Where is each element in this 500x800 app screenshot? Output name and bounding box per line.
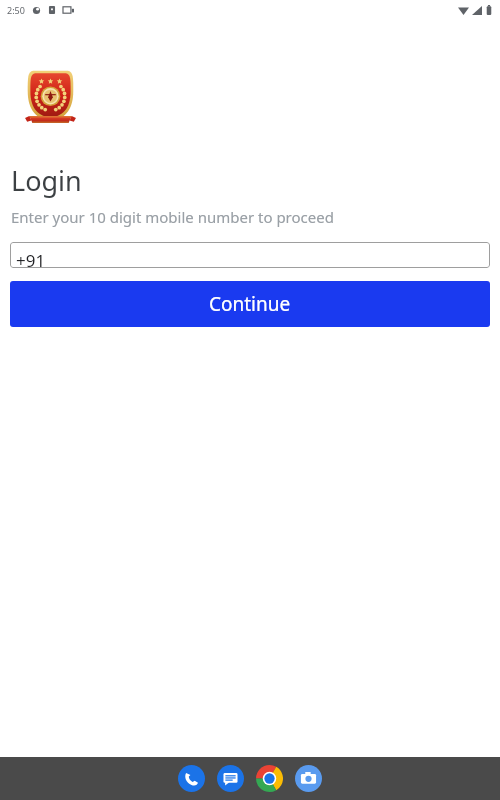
button[interactable]: +91 <box>10 242 490 268</box>
staticText: _____ _____ <box>52 251 123 268</box>
staticText: +91 <box>16 249 46 268</box>
button[interactable]: Camera <box>295 765 322 792</box>
staticText: 2:50 <box>7 4 25 16</box>
button[interactable]: Chrome <box>256 765 283 792</box>
staticText: Continue <box>209 291 291 317</box>
staticText: Enter your 10 digit mobile number to pro… <box>11 207 334 227</box>
button[interactable]: Continue <box>10 281 490 327</box>
button[interactable]: Phone <box>178 765 205 792</box>
button[interactable]: Messages <box>217 765 244 792</box>
staticText: Login <box>11 162 82 199</box>
